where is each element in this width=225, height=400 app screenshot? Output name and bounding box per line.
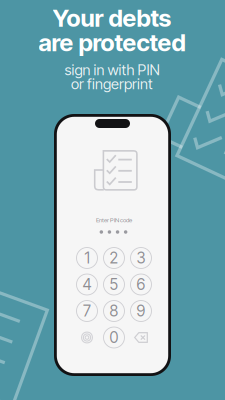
button[interactable]: 1	[73, 245, 100, 271]
staticText: 3	[136, 249, 145, 267]
staticText: 0	[109, 328, 118, 347]
staticText: Enter PIN code	[96, 216, 132, 224]
staticText: 4	[82, 275, 91, 294]
button[interactable]: 5	[100, 271, 127, 298]
button[interactable]: 4	[73, 271, 100, 298]
button[interactable]: Delete	[127, 324, 154, 351]
button[interactable]: 6	[127, 271, 154, 298]
button[interactable]: 0	[100, 324, 127, 351]
staticText: sign in with PIN	[64, 61, 159, 79]
button[interactable]: 3	[127, 245, 154, 271]
staticText: 6	[136, 275, 145, 294]
button[interactable]: 7	[73, 298, 100, 324]
staticText: are protected	[38, 28, 185, 57]
staticText: 8	[109, 302, 118, 320]
button[interactable]: 2	[100, 245, 127, 271]
staticText: 9	[136, 302, 145, 320]
staticText: 2	[109, 249, 118, 267]
staticText: 5	[109, 275, 118, 294]
staticText: 1	[84, 249, 89, 267]
button[interactable]: 9	[127, 298, 154, 324]
staticText: 7	[83, 302, 91, 320]
button[interactable]: Fingerprint	[73, 324, 100, 351]
button[interactable]: 8	[100, 298, 127, 324]
staticText: Your debts	[52, 3, 171, 32]
staticText: or fingerprint	[71, 75, 153, 93]
